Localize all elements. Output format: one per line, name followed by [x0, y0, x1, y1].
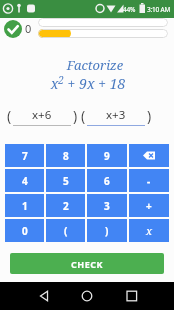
button[interactable]: 8 — [46, 144, 85, 167]
staticText: ) — [145, 106, 153, 125]
button[interactable]: + — [129, 194, 169, 217]
staticText: 4 — [22, 174, 28, 188]
button[interactable]: - — [129, 169, 169, 192]
staticText: ( — [5, 106, 13, 125]
staticText: ( — [64, 224, 68, 238]
staticText: 9 — [104, 149, 110, 163]
button[interactable]: 7 — [5, 144, 44, 167]
button[interactable]: 1 — [5, 194, 44, 217]
staticText: x — [146, 223, 153, 238]
staticText: 3:10 AM — [147, 5, 171, 14]
staticText: 8 — [63, 149, 69, 163]
button[interactable]: 9 — [87, 144, 127, 167]
staticText: CHECK — [71, 258, 103, 270]
staticText: 6 — [104, 174, 110, 188]
staticText: 3 — [104, 199, 110, 213]
staticText: + — [146, 199, 152, 213]
button[interactable]: 0 — [5, 219, 44, 242]
button[interactable]: 5 — [46, 169, 85, 192]
button[interactable]: ) — [87, 219, 127, 242]
button[interactable] — [129, 144, 169, 167]
staticText: x2 + 9x + 18 — [1, 73, 174, 93]
staticText: x+6 — [32, 107, 52, 123]
staticText: ) — [105, 224, 109, 238]
button[interactable]: 4 — [5, 169, 44, 192]
button[interactable]: ( — [46, 219, 85, 242]
staticText: 2 — [63, 199, 69, 213]
button[interactable] — [58, 282, 116, 310]
button[interactable] — [0, 282, 58, 310]
staticText: - — [147, 174, 151, 188]
staticText: 0 — [22, 224, 28, 238]
staticText: ) — [71, 106, 79, 125]
button[interactable]: 6 — [87, 169, 127, 192]
button[interactable]: x+6 — [13, 104, 71, 126]
button[interactable]: 3 — [87, 194, 127, 217]
staticText: 0 — [25, 21, 32, 36]
staticText: ( — [79, 106, 87, 125]
staticText: 44% — [123, 5, 136, 14]
button[interactable]: CHECK — [10, 253, 164, 274]
button[interactable] — [116, 282, 174, 310]
staticText: 5 — [63, 174, 69, 188]
button[interactable]: x — [129, 219, 169, 242]
staticText: Factorize — [8, 56, 174, 74]
button[interactable]: x+3 — [87, 104, 145, 126]
staticText: x+3 — [106, 107, 126, 123]
staticText: 1 — [22, 199, 28, 213]
button[interactable]: 2 — [46, 194, 85, 217]
staticText: 7 — [22, 149, 28, 163]
